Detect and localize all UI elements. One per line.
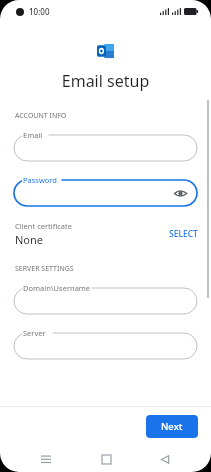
staticText: SERVER SETTINGS	[15, 264, 74, 274]
staticText: ACCOUNT INFO	[15, 111, 67, 121]
button[interactable]: Back	[152, 446, 178, 472]
button[interactable]: Server	[13, 328, 198, 360]
staticText: Email	[23, 130, 43, 140]
staticText: Password	[23, 175, 57, 185]
staticText: Domain\Username	[23, 283, 91, 293]
staticText: Server	[23, 328, 46, 338]
button[interactable]: Password	[13, 175, 198, 207]
button[interactable]: Client certificate	[0, 221, 211, 247]
button[interactable]: Home	[93, 446, 119, 472]
button[interactable]: Next	[146, 415, 198, 438]
staticText: SELECT	[169, 228, 198, 240]
staticText: 10:00	[29, 6, 50, 17]
staticText: Email setup	[0, 70, 211, 92]
button[interactable]: Email	[13, 130, 198, 162]
button[interactable]: Show password	[173, 186, 188, 201]
staticText: None	[15, 232, 44, 247]
staticText: Next	[161, 420, 183, 433]
staticText: Client certificate	[15, 221, 72, 231]
button[interactable]: Recent apps	[33, 446, 59, 472]
button[interactable]: Domain\Username	[13, 283, 198, 315]
